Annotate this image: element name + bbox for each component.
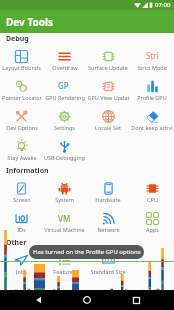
button[interactable]: System bbox=[43, 177, 86, 207]
staticText: Dev Options bbox=[6, 124, 38, 131]
button[interactable]: Dont keep activi bbox=[130, 105, 174, 135]
button[interactable]: Locale Set bbox=[86, 105, 130, 135]
button[interactable]: Home bbox=[77, 290, 97, 310]
button[interactable]: Apps bbox=[130, 207, 174, 237]
button[interactable]: Layout Bounds bbox=[0, 45, 43, 75]
staticText: Debug bbox=[6, 34, 29, 44]
button[interactable]: Stay Awake bbox=[0, 135, 43, 165]
staticText: Jobs bbox=[16, 268, 27, 275]
staticText: Apps bbox=[146, 226, 159, 233]
button[interactable]: Pointer Locator bbox=[0, 75, 43, 105]
button[interactable]: Features bbox=[43, 249, 86, 279]
button[interactable]: Network bbox=[86, 207, 130, 237]
button[interactable]: Overdraw bbox=[43, 45, 86, 75]
staticText: GPU Rendering bbox=[45, 94, 85, 101]
staticText: Network bbox=[97, 226, 120, 233]
staticText: Locale Set bbox=[95, 124, 121, 131]
button[interactable]: GPU View Updat bbox=[86, 75, 130, 105]
staticText: Overdraw bbox=[52, 64, 78, 71]
staticText: Dev Tools bbox=[6, 15, 53, 29]
button[interactable]: Screen bbox=[0, 177, 43, 207]
button[interactable]: CPU bbox=[130, 177, 174, 207]
staticText: 07:00 bbox=[155, 1, 171, 9]
staticText: Standard Size bbox=[90, 268, 126, 275]
staticText: Has turned on the Profile GPU options bbox=[33, 248, 141, 256]
staticText: GPU bbox=[58, 80, 71, 93]
button[interactable]: Standard Size bbox=[86, 249, 130, 279]
staticText: Settings bbox=[54, 124, 75, 131]
staticText: Layout Bounds bbox=[2, 64, 41, 71]
staticText: Surface Update bbox=[88, 64, 128, 71]
button[interactable]: IDs bbox=[0, 207, 43, 237]
staticText: Strict Mode bbox=[137, 64, 167, 71]
staticText: CPU bbox=[147, 196, 158, 203]
staticText: Information bbox=[6, 166, 49, 176]
staticText: Other bbox=[6, 238, 27, 248]
button[interactable]: VM bbox=[43, 207, 86, 237]
staticText: Virtual Machine bbox=[44, 226, 85, 233]
staticText: Dont keep activi bbox=[131, 124, 173, 131]
button[interactable]: Strict bbox=[130, 45, 174, 75]
staticText: USB Debugging bbox=[44, 154, 85, 161]
staticText: Hardware bbox=[95, 196, 121, 203]
staticText: System bbox=[55, 196, 74, 203]
button[interactable]: Dev Options bbox=[0, 105, 43, 135]
staticText: Strict bbox=[146, 50, 159, 63]
button[interactable]: Surface Update bbox=[86, 45, 130, 75]
button[interactable]: Jobs bbox=[0, 249, 43, 279]
staticText: Profile GPU bbox=[137, 94, 167, 101]
staticText: IDs bbox=[17, 226, 26, 233]
button[interactable]: Recents bbox=[126, 290, 146, 310]
button[interactable]: Hardware bbox=[86, 177, 130, 207]
button[interactable]: Settings bbox=[43, 105, 86, 135]
staticText: Screen bbox=[13, 196, 31, 203]
staticText: Features bbox=[53, 268, 76, 275]
staticText: VM bbox=[58, 213, 71, 224]
button[interactable]: Profile GPU bbox=[130, 75, 174, 105]
staticText: GPU View Updat bbox=[87, 94, 130, 101]
button[interactable]: GPU bbox=[43, 75, 86, 105]
staticText: Stay Awake bbox=[7, 154, 37, 161]
button[interactable]: USB Debugging bbox=[43, 135, 86, 165]
button[interactable]: Back bbox=[29, 290, 49, 310]
staticText: Pointer Locator bbox=[2, 94, 42, 101]
